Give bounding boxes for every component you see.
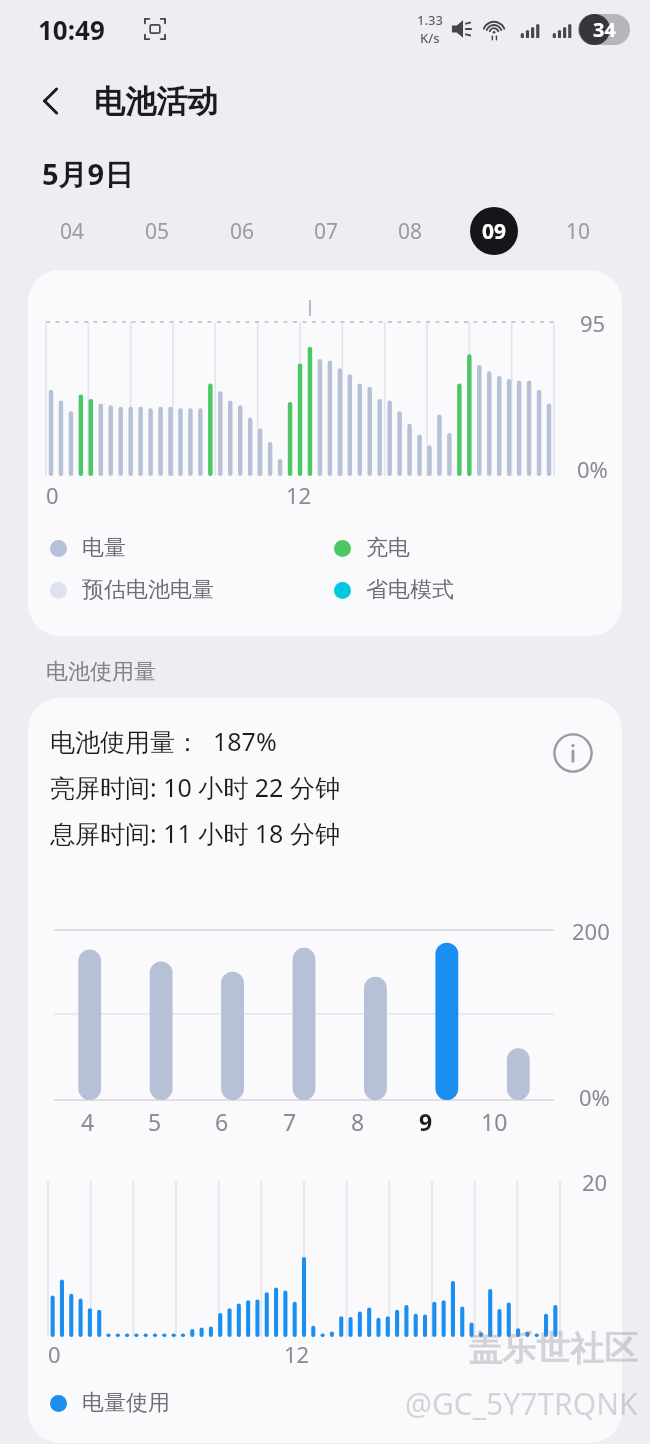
button[interactable]: 06 [200, 202, 284, 260]
button[interactable]: 05 [115, 202, 200, 260]
staticText: @GC_5Y7TRQNK [405, 1383, 638, 1424]
staticText: 09 [482, 217, 507, 246]
button[interactable]: 04 [30, 202, 115, 260]
staticText: 电量 [82, 534, 126, 562]
staticText: 95 [580, 308, 606, 338]
staticText: 电池活动 [94, 82, 218, 121]
staticText: 0 [48, 1339, 61, 1369]
staticText: 0 [46, 480, 59, 510]
staticText: 充电 [366, 534, 410, 562]
staticText: 10 [566, 217, 591, 246]
staticText: 预估电池电量 [82, 576, 214, 604]
staticText: K/s [420, 29, 440, 47]
button[interactable]: 07 [284, 202, 368, 260]
staticText: 06 [230, 217, 255, 246]
button[interactable]: Back [22, 72, 80, 130]
staticText: 200 [572, 916, 610, 946]
button[interactable]: 09 [452, 202, 536, 260]
staticText: 5月9日 [42, 154, 134, 194]
staticText: 10 [481, 1106, 508, 1137]
staticText: 电量使用 [82, 1389, 170, 1417]
staticText: 12 [284, 1339, 310, 1369]
staticText: 1.33 [417, 11, 443, 29]
staticText: 12 [286, 480, 312, 510]
staticText: 电池使用量 [46, 658, 156, 686]
button[interactable]: 95 [28, 270, 622, 636]
staticText: 省电模式 [366, 576, 454, 604]
button[interactable]: 电量使用 [50, 1389, 170, 1417]
staticText: 7 [283, 1106, 297, 1137]
staticText: 亮屏时间: 10 小时 22 分钟 [50, 770, 340, 804]
staticText: 盖乐世社区 [468, 1327, 638, 1370]
staticText: 10:49 [38, 12, 105, 47]
staticText: 电池使用量： 187% [50, 724, 277, 758]
staticText: 8 [351, 1106, 365, 1137]
staticText: 04 [60, 217, 85, 246]
staticText: 07 [314, 217, 339, 246]
button[interactable]: 10 [536, 202, 620, 260]
staticText: 9 [419, 1106, 433, 1137]
button[interactable]: Information [548, 728, 598, 778]
staticText: 20 [582, 1167, 608, 1197]
staticText: 08 [398, 217, 423, 246]
staticText: 05 [145, 217, 170, 246]
staticText: 息屏时间: 11 小时 18 分钟 [50, 816, 340, 850]
staticText: 0% [579, 1082, 610, 1112]
staticText: 34 [593, 16, 616, 43]
staticText: 4 [81, 1106, 95, 1137]
staticText: 5 [148, 1106, 162, 1137]
button[interactable]: 08 [368, 202, 452, 260]
staticText: 6 [215, 1106, 229, 1137]
staticText: 0% [577, 454, 608, 484]
